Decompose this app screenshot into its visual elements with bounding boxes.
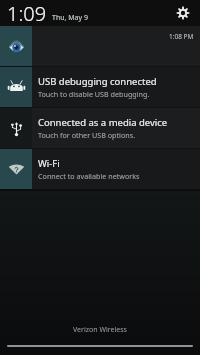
- staticText: Thu, May 9: [52, 13, 88, 23]
- staticText: USB debugging connected: [38, 75, 157, 88]
- staticText: 1:08 PM: [169, 32, 194, 41]
- staticText: Wi-Fi: [38, 157, 60, 170]
- staticText: 1:09: [7, 0, 47, 26]
- button[interactable]: Wi-Fi: [0, 149, 200, 189]
- button[interactable]: USB debugging connected: [0, 67, 200, 107]
- staticText: Verizon Wireless: [73, 325, 127, 335]
- button[interactable]: Settings: [172, 2, 194, 24]
- staticText: Touch to disable USB debugging.: [38, 89, 150, 99]
- button[interactable]: Connected as a media device: [0, 108, 200, 148]
- button[interactable]: Verizon Wireless: [0, 321, 200, 355]
- staticText: Touch for other USB options.: [38, 130, 136, 140]
- staticText: Connected as a media device: [38, 116, 168, 129]
- button[interactable]: Stay awake On: [0, 26, 200, 66]
- staticText: Connect to available networks: [38, 171, 140, 181]
